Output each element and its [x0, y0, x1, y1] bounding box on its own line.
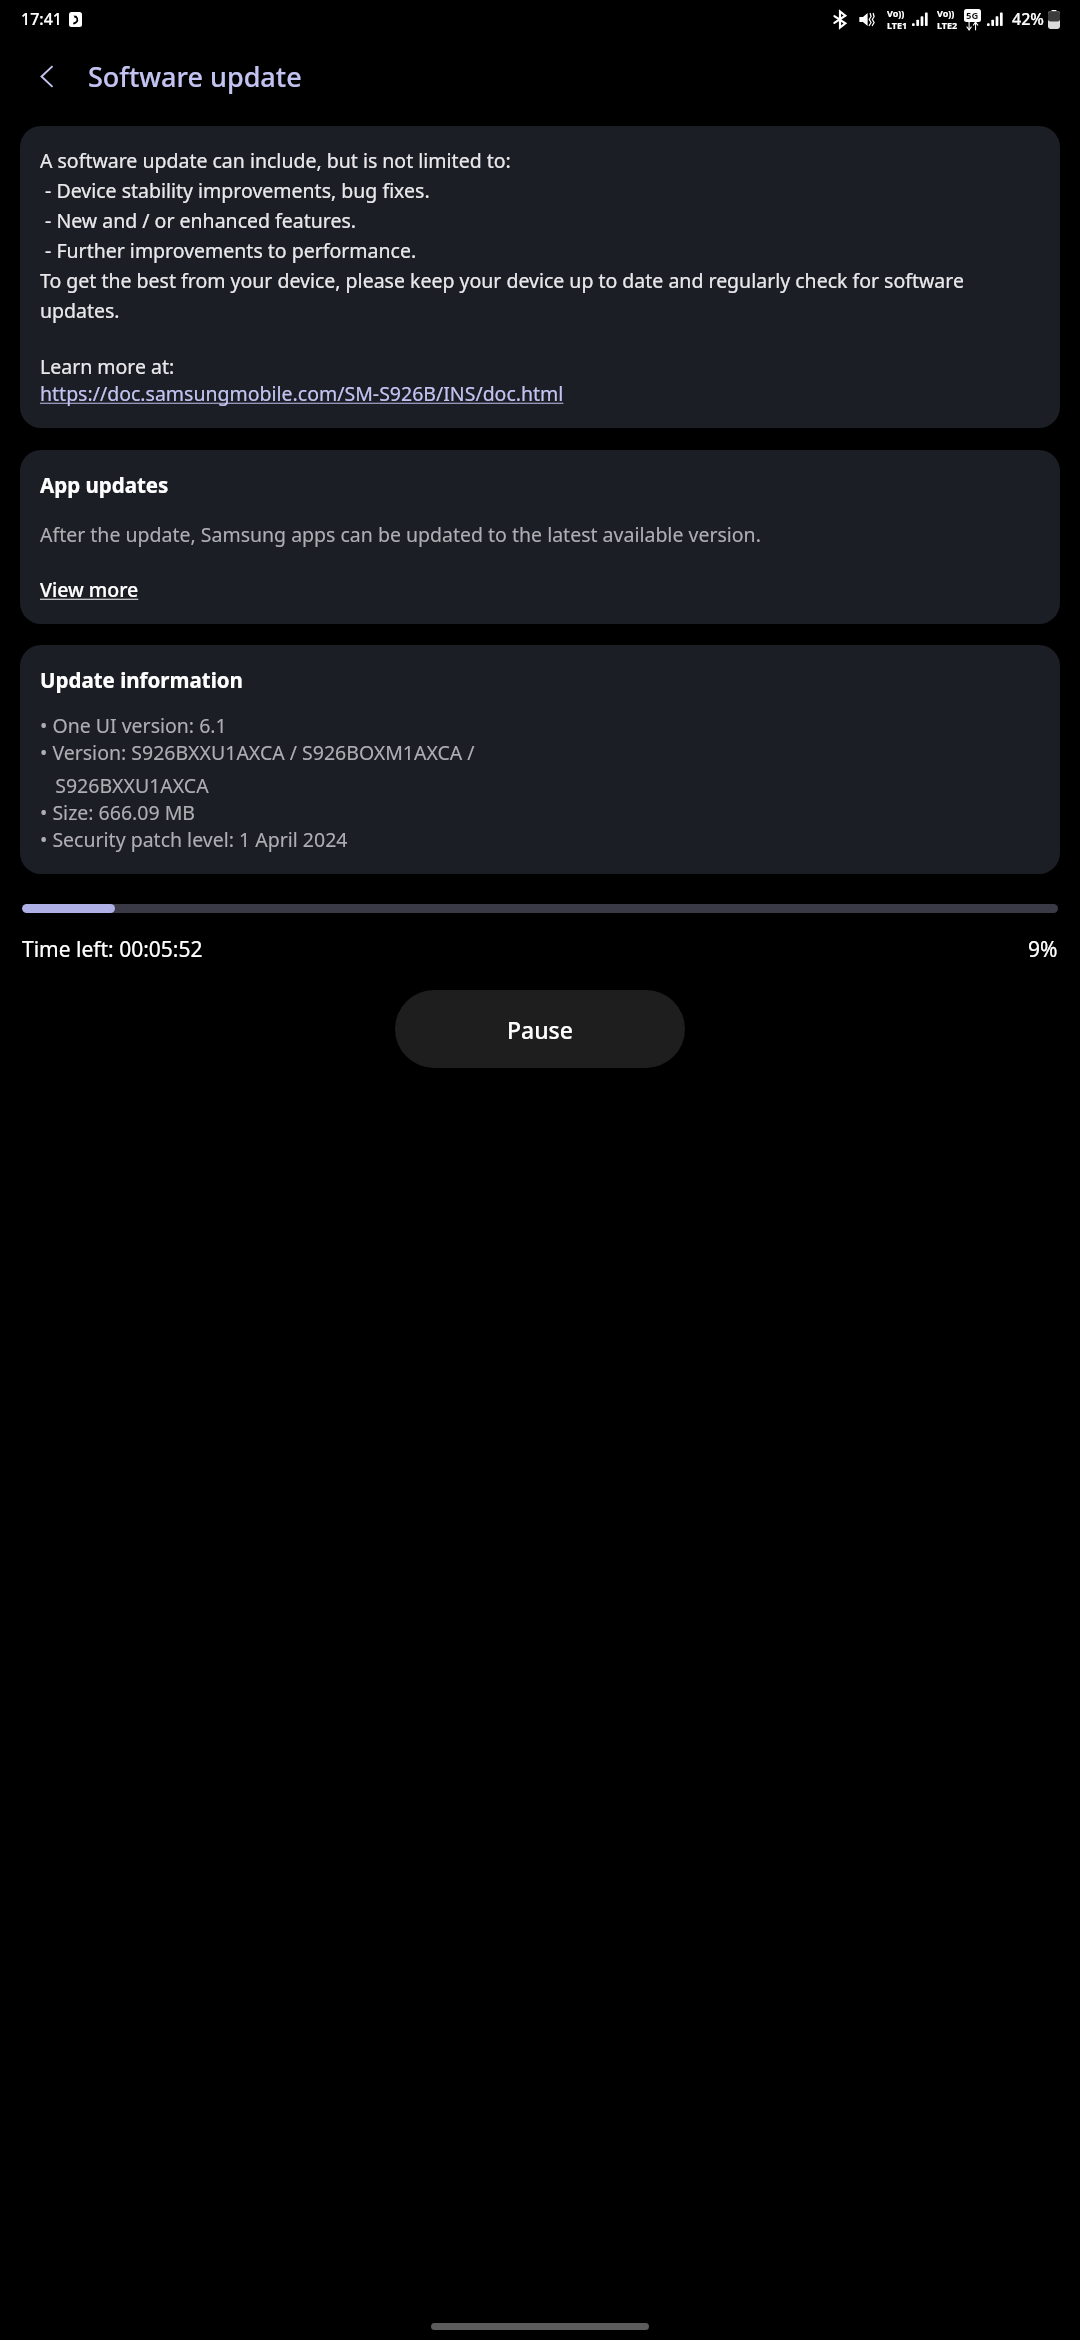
staticText: Time left: 00:05:52: [22, 935, 203, 964]
staticText: 5G: [966, 9, 979, 22]
button[interactable]: Back: [20, 49, 74, 103]
button[interactable]: Pause: [395, 990, 685, 1068]
staticText: Vo)): [937, 7, 955, 19]
button[interactable]: A software update can include, but is no…: [20, 126, 1060, 428]
staticText: LTE2: [937, 19, 958, 31]
staticText: • One UI version: 6.1: [40, 712, 227, 739]
staticText: App updates: [40, 471, 169, 499]
staticText: 9%: [1028, 935, 1058, 964]
staticText: • Version: S926BXXU1AXCA / S926BOXM1AXCA…: [40, 739, 475, 799]
staticText: After the update, Samsung apps can be up…: [40, 521, 761, 548]
button[interactable]: App updates: [20, 450, 1060, 624]
staticText: Learn more at:: [40, 353, 175, 380]
staticText: LTE1: [887, 19, 908, 31]
button[interactable]: View more: [40, 576, 139, 603]
staticText: 42%: [1012, 8, 1044, 30]
staticText: • Security patch level: 1 April 2024: [40, 826, 348, 853]
staticText: Update information: [40, 666, 243, 694]
staticText: A software update can include, but is no…: [40, 147, 1040, 323]
button[interactable]: https://doc.samsungmobile.com/SM-S926B/I…: [40, 380, 564, 407]
staticText: • Size: 666.09 MB: [40, 799, 196, 826]
staticText: 17:41: [21, 8, 62, 30]
staticText: Pause: [507, 1014, 573, 1045]
staticText: Vo)): [887, 7, 905, 19]
staticText: Software update: [88, 58, 302, 95]
button[interactable]: Update information: [20, 645, 1060, 874]
